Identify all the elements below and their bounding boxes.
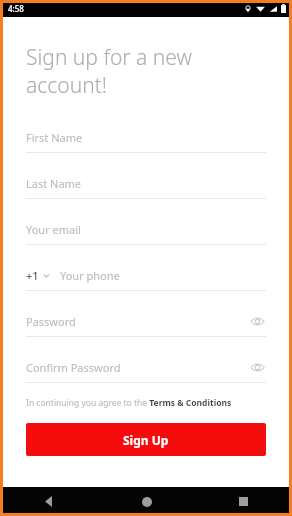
staticText: Confirm Password bbox=[26, 360, 121, 375]
button[interactable]: Last Name bbox=[26, 173, 266, 199]
button[interactable]: Toggle password visibility bbox=[248, 358, 266, 376]
staticText: Your email bbox=[26, 222, 81, 237]
button[interactable]: Home bbox=[98, 487, 195, 516]
other: Select country code bbox=[42, 271, 51, 280]
button[interactable]: Confirm Password bbox=[26, 357, 266, 383]
staticText: Your phone bbox=[60, 268, 120, 283]
staticText: First Name bbox=[26, 130, 83, 145]
button[interactable]: +1 bbox=[26, 265, 266, 291]
button[interactable]: Back bbox=[0, 487, 98, 516]
button[interactable]: Your email bbox=[26, 219, 266, 245]
staticText: 4:58 bbox=[8, 3, 24, 14]
staticText: Last Name bbox=[26, 176, 82, 191]
button[interactable]: In continuing you agree to the Terms & C… bbox=[26, 397, 232, 409]
button[interactable]: Sign Up bbox=[26, 423, 266, 456]
staticText: Password bbox=[26, 314, 76, 329]
button[interactable]: First Name bbox=[26, 127, 266, 153]
staticText: Sign Up bbox=[123, 432, 169, 448]
staticText: Sign up for a new account! bbox=[26, 43, 192, 99]
staticText: +1 bbox=[26, 268, 39, 283]
button[interactable]: Toggle password visibility bbox=[248, 312, 266, 330]
button[interactable]: Recent apps bbox=[195, 487, 292, 516]
button[interactable]: Password bbox=[26, 311, 266, 337]
